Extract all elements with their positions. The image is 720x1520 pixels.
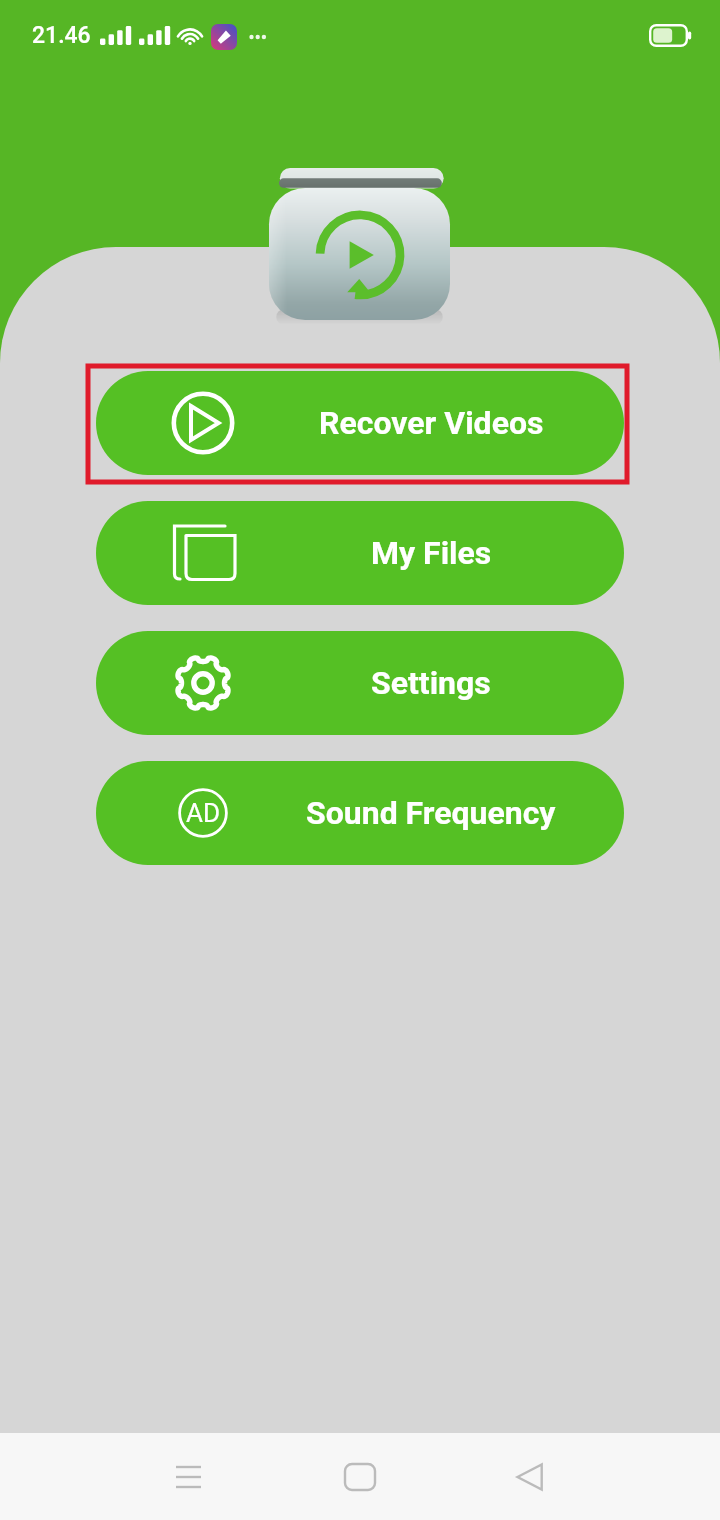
button[interactable]: My Files [96, 501, 624, 605]
button[interactable]: Sound Frequency [96, 761, 624, 865]
staticText: Sound Frequency [306, 794, 556, 832]
other: Sound Frequency [170, 780, 236, 846]
button[interactable]: Back [490, 1433, 570, 1520]
other: Recover Videos [170, 390, 236, 456]
staticText: AD [186, 798, 221, 828]
staticText: Recover Videos [319, 404, 544, 442]
other: Settings [170, 650, 236, 716]
other: My Files [170, 520, 236, 586]
staticText: My Files [371, 534, 492, 572]
staticText: Settings [371, 664, 491, 702]
button[interactable]: Settings [96, 631, 624, 735]
button[interactable]: Recover Videos [96, 371, 624, 475]
button[interactable]: Home [320, 1433, 400, 1520]
button[interactable]: Recent apps [148, 1433, 228, 1520]
staticText: 21.46 [32, 22, 91, 49]
